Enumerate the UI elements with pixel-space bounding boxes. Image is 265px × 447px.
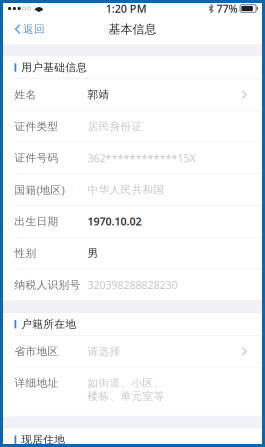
staticText: 性别 bbox=[14, 247, 36, 260]
staticText: 如街道、小区、楼栋、单元室等 bbox=[87, 376, 164, 403]
staticText: 姓名 bbox=[14, 88, 36, 101]
staticText: 320398288828230 bbox=[87, 278, 177, 292]
button[interactable]: 省市地区 bbox=[3, 336, 262, 367]
staticText: 现居住地 bbox=[21, 433, 65, 446]
staticText: 男 bbox=[87, 247, 98, 260]
staticText: 郭靖 bbox=[87, 88, 109, 101]
staticText: 国籍(地区) bbox=[14, 183, 64, 197]
staticText: 1970.10.02 bbox=[87, 214, 141, 229]
staticText: 省市地区 bbox=[14, 345, 58, 358]
staticText: 返回 bbox=[23, 23, 45, 36]
staticText: 中华人民共和国 bbox=[87, 183, 164, 196]
staticText: 77% bbox=[216, 1, 237, 16]
button[interactable]: 姓名 bbox=[3, 79, 262, 111]
staticText: 用户基础信息 bbox=[21, 61, 87, 74]
staticText: 户籍所在地 bbox=[21, 318, 76, 331]
staticText: 出生日期 bbox=[14, 215, 58, 228]
staticText: 证件号码 bbox=[14, 151, 58, 165]
staticText: 纳税人识别号 bbox=[14, 278, 80, 291]
staticText: 详细地址 bbox=[14, 376, 58, 390]
staticText: 居民身份证 bbox=[87, 120, 142, 133]
staticText: 362************15X bbox=[87, 151, 195, 165]
staticText: 证件类型 bbox=[14, 120, 58, 133]
button[interactable]: 返回 bbox=[3, 14, 53, 44]
staticText: 基本信息 bbox=[108, 22, 156, 36]
staticText: 1:20 PM bbox=[106, 1, 147, 16]
staticText: 请选择 bbox=[87, 345, 120, 358]
